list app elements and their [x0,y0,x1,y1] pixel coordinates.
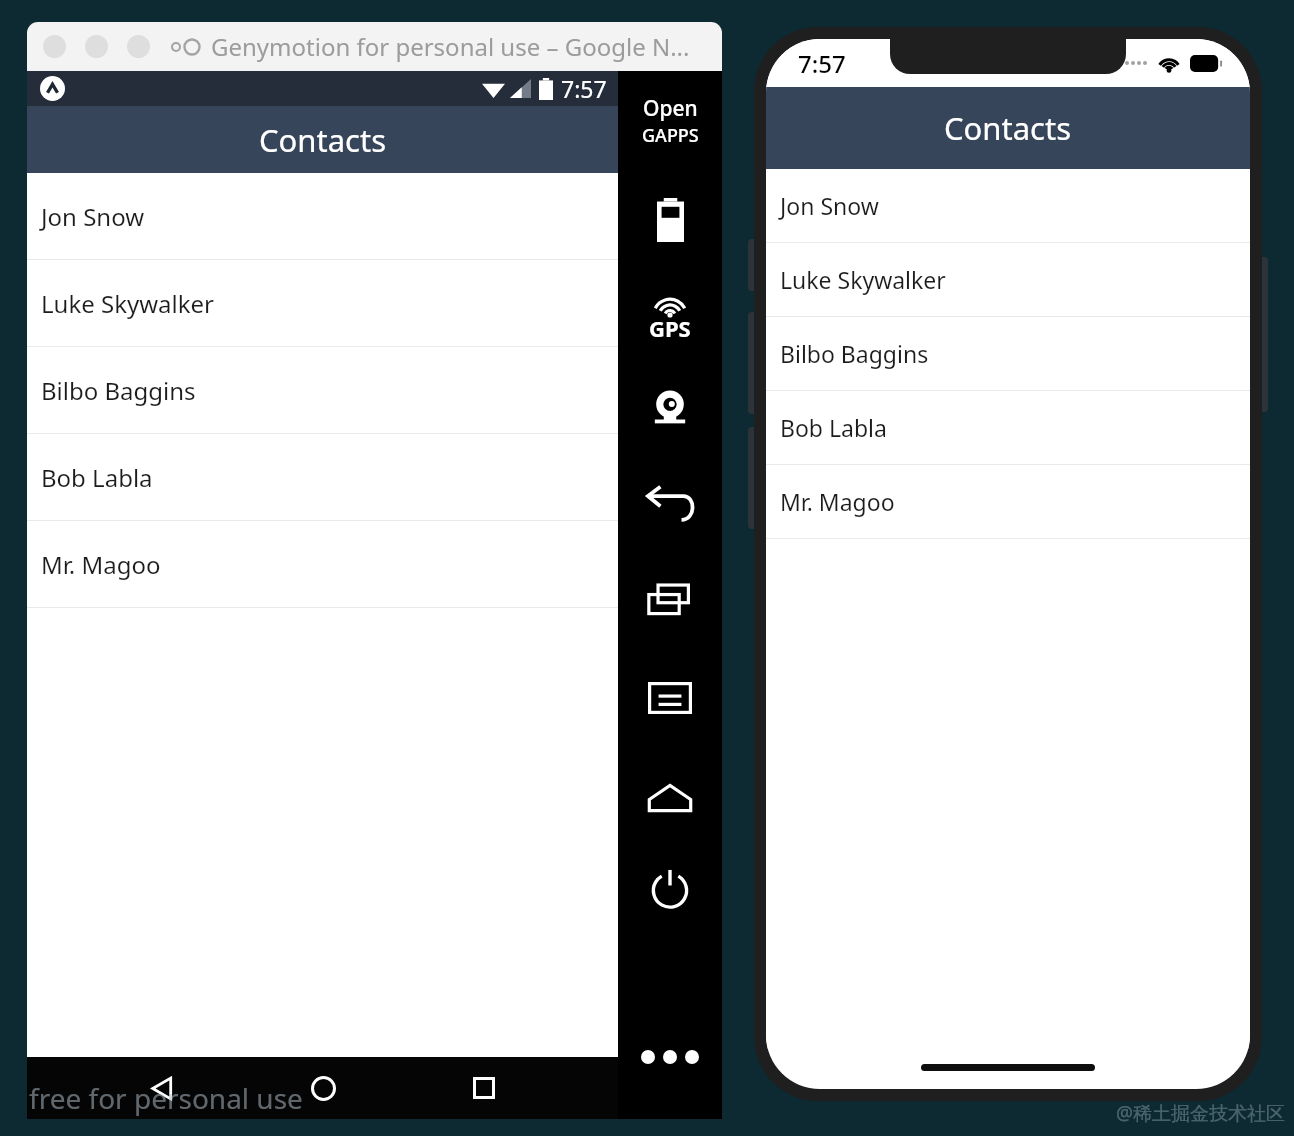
staticText: Luke Skywalker [780,264,946,295]
button[interactable]: Back [631,480,709,528]
button[interactable]: Jon Snow [27,173,618,260]
button[interactable]: Luke Skywalker [27,260,618,347]
button[interactable]: Bob Labla [27,434,618,521]
button[interactable]: Home [631,774,709,822]
button[interactable]: Jon Snow [766,169,1250,243]
staticText: Jon Snow [780,190,879,221]
button[interactable]: Power [631,864,709,912]
staticText: GAPPS [642,123,699,148]
button[interactable]: Mr. Magoo [766,465,1250,539]
button[interactable]: Bilbo Baggins [766,317,1250,391]
button[interactable]: Recents [456,1060,512,1116]
button[interactable]: Home [295,1060,351,1116]
staticText: Jon Snow [41,200,145,233]
staticText: Contacts [944,107,1072,149]
staticText: 7:57 [561,73,607,104]
staticText: Bob Labla [780,412,887,443]
staticText: Genymotion for personal use – Google N..… [211,30,690,63]
button[interactable]: Bilbo Baggins [27,347,618,434]
staticText: Mr. Magoo [780,486,895,517]
staticText: Luke Skywalker [41,287,215,320]
button[interactable]: Mr. Magoo [27,521,618,608]
staticText: Bilbo Baggins [780,338,929,369]
staticText: Open [643,94,698,123]
button[interactable]: Bob Labla [766,391,1250,465]
staticText: @稀土掘金技术社区 [1116,1100,1286,1126]
staticText: Bob Labla [41,461,153,494]
button[interactable]: Recents [631,576,709,624]
staticText: free for personal use [29,1079,303,1117]
button[interactable]: More [631,1033,709,1081]
button[interactable]: Menu [631,674,709,722]
button[interactable]: Battery [631,196,709,244]
button[interactable]: GPS [631,296,709,344]
button[interactable]: Open [624,91,716,151]
staticText: GPS [649,313,691,343]
staticText: Bilbo Baggins [41,374,196,407]
button[interactable]: Back [133,1060,189,1116]
staticText: Contacts [259,119,387,161]
staticText: 7:57 [798,47,846,80]
staticText: Mr. Magoo [41,548,161,581]
button[interactable]: Luke Skywalker [766,243,1250,317]
button[interactable]: Camera [631,384,709,432]
